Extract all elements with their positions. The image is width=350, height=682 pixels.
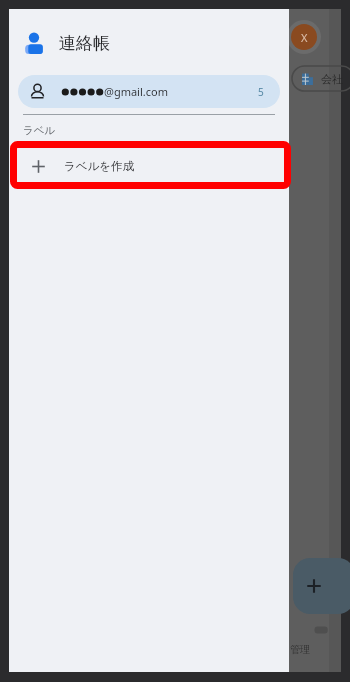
button[interactable]: 管理: [290, 623, 350, 656]
button[interactable]: @gmail.com: [18, 75, 280, 108]
button[interactable]: Add contact: [293, 558, 350, 614]
staticText: 会社: [321, 72, 343, 86]
staticText: ラベル: [23, 124, 56, 137]
staticText: 連絡帳: [59, 33, 110, 54]
staticText: 5: [258, 85, 264, 99]
button[interactable]: ラベルを作成: [9, 149, 289, 183]
button[interactable]: 会社: [292, 66, 350, 91]
staticText: 管理: [290, 643, 350, 656]
button[interactable]: Account: [287, 20, 321, 54]
staticText: ラベルを作成: [64, 159, 135, 173]
staticText: @gmail.com: [104, 84, 168, 99]
staticText: X: [301, 30, 308, 45]
